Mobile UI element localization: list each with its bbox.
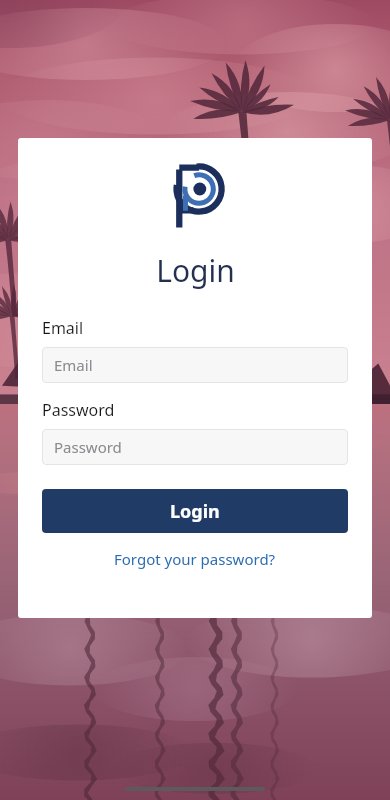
staticText: Forgot your password? bbox=[114, 549, 276, 569]
button[interactable]: Password bbox=[42, 429, 348, 465]
staticText: Password bbox=[54, 437, 122, 457]
staticText: Login bbox=[156, 250, 235, 291]
button[interactable]: Email bbox=[42, 347, 348, 383]
staticText: Password bbox=[42, 399, 115, 421]
button[interactable]: Forgot your password? bbox=[108, 547, 282, 571]
button[interactable]: Login bbox=[42, 489, 348, 533]
staticText: Email bbox=[42, 317, 84, 339]
staticText: Email bbox=[54, 355, 93, 375]
staticText: Login bbox=[170, 499, 220, 524]
